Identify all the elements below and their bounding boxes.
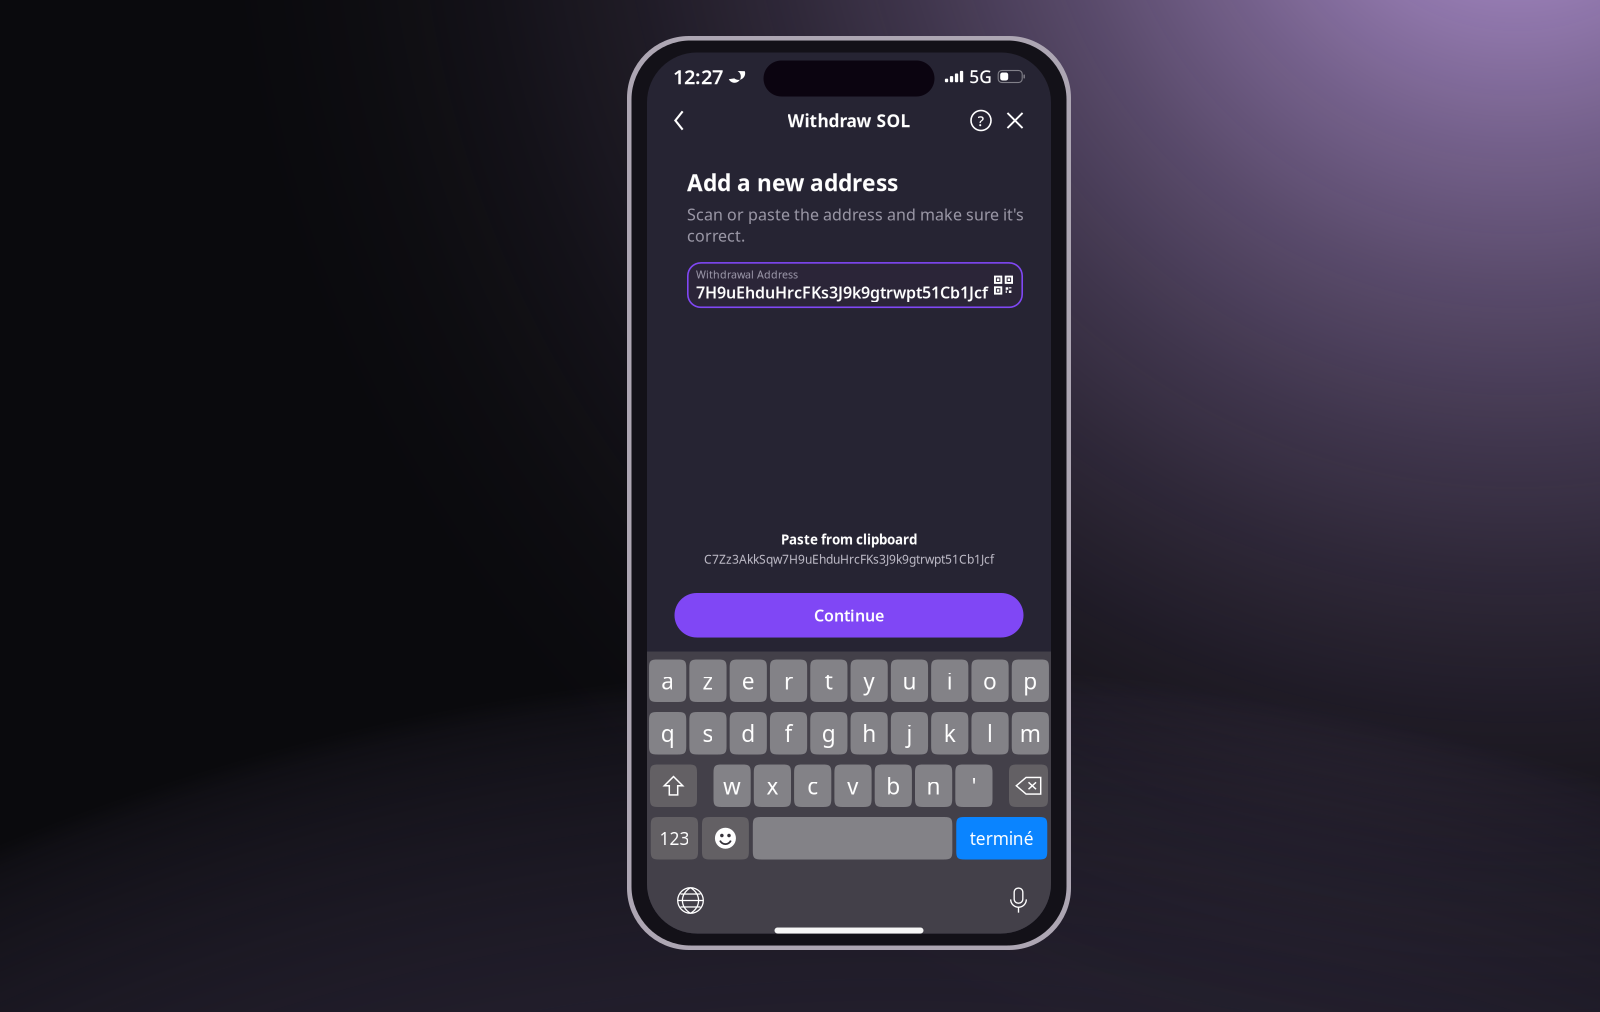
button[interactable]: c bbox=[794, 764, 831, 807]
button[interactable]: k bbox=[931, 712, 968, 754]
staticText: terminé bbox=[970, 827, 1034, 850]
staticText: f bbox=[784, 718, 792, 748]
staticText: C7Zz3AkkSqw7H9uEhduHrcFKs3J9k9gtrwpt51Cb… bbox=[704, 551, 994, 567]
button[interactable]: Shift bbox=[650, 764, 697, 807]
staticText: Withdrawal Address bbox=[696, 267, 798, 282]
staticText: w bbox=[723, 771, 741, 801]
staticText: e bbox=[742, 666, 755, 696]
staticText: k bbox=[944, 718, 956, 748]
staticText: p bbox=[1023, 666, 1037, 696]
button[interactable]: h bbox=[850, 712, 888, 754]
button[interactable]: z bbox=[689, 659, 726, 702]
staticText: y bbox=[863, 666, 875, 696]
button[interactable]: 123 bbox=[651, 817, 698, 859]
staticText: Continue bbox=[814, 605, 884, 626]
staticText: h bbox=[862, 718, 876, 748]
button[interactable]: Paste from clipboard bbox=[679, 530, 1019, 567]
button[interactable]: x bbox=[754, 764, 791, 807]
button[interactable]: Help bbox=[965, 103, 997, 137]
staticText: d bbox=[741, 718, 755, 748]
button[interactable]: Delete bbox=[1009, 764, 1048, 807]
staticText: s bbox=[702, 718, 713, 748]
staticText: t bbox=[825, 666, 833, 696]
button[interactable]: g bbox=[810, 712, 847, 754]
staticText: n bbox=[927, 771, 941, 801]
button[interactable]: Scan QR code bbox=[994, 276, 1013, 295]
button[interactable]: ' bbox=[955, 764, 992, 807]
button[interactable]: e bbox=[730, 659, 767, 702]
button[interactable]: Space bbox=[753, 817, 952, 859]
button[interactable]: Back bbox=[663, 103, 695, 137]
button[interactable]: s bbox=[689, 712, 726, 754]
staticText: i bbox=[947, 666, 953, 696]
staticText: x bbox=[766, 771, 778, 801]
button[interactable]: o bbox=[971, 659, 1009, 702]
staticText: 12:27 bbox=[673, 63, 723, 90]
staticText: Withdraw SOL bbox=[787, 109, 910, 132]
button[interactable]: j bbox=[891, 712, 928, 754]
button[interactable]: l bbox=[971, 712, 1009, 754]
staticText: 123 bbox=[659, 827, 689, 850]
button[interactable]: r bbox=[770, 659, 807, 702]
staticText: o bbox=[983, 666, 997, 696]
button[interactable]: b bbox=[875, 764, 912, 807]
staticText: v bbox=[847, 771, 859, 801]
button[interactable]: i bbox=[931, 659, 968, 702]
button[interactable]: q bbox=[649, 712, 686, 754]
button[interactable]: Emoji bbox=[702, 817, 749, 859]
button[interactable]: Switch keyboard bbox=[670, 880, 710, 920]
staticText: ' bbox=[971, 771, 976, 801]
button[interactable]: p bbox=[1012, 659, 1049, 702]
button[interactable]: terminé bbox=[956, 817, 1047, 859]
button[interactable]: m bbox=[1012, 712, 1049, 754]
staticText: l bbox=[987, 718, 993, 748]
button[interactable]: y bbox=[850, 659, 888, 702]
button[interactable]: w bbox=[713, 764, 751, 807]
staticText: ? bbox=[977, 111, 984, 130]
button[interactable]: t bbox=[810, 659, 847, 702]
staticText: u bbox=[902, 666, 916, 696]
button[interactable]: a bbox=[649, 659, 686, 702]
button[interactable]: v bbox=[834, 764, 872, 807]
staticText: z bbox=[702, 666, 713, 696]
staticText: Paste from clipboard bbox=[781, 530, 917, 548]
staticText: b bbox=[886, 771, 900, 801]
staticText: 5G bbox=[969, 65, 992, 88]
button[interactable]: d bbox=[730, 712, 767, 754]
staticText: Scan or paste the address and make sure … bbox=[687, 204, 1024, 246]
staticText: r bbox=[784, 666, 793, 696]
staticText: c bbox=[807, 771, 818, 801]
staticText: j bbox=[906, 718, 912, 748]
button[interactable]: f bbox=[770, 712, 807, 754]
button[interactable]: Continue bbox=[674, 593, 1023, 637]
staticText: g bbox=[822, 718, 836, 748]
staticText: Add a new address bbox=[687, 167, 898, 198]
staticText: 7H9uEhduHrcFKs3J9k9gtrwpt51Cb1Jcf bbox=[696, 282, 988, 303]
staticText: m bbox=[1020, 718, 1041, 748]
staticText: a bbox=[661, 666, 674, 696]
button[interactable]: n bbox=[915, 764, 952, 807]
button[interactable]: Dictate bbox=[998, 880, 1038, 920]
staticText: q bbox=[661, 718, 675, 748]
button[interactable]: u bbox=[891, 659, 928, 702]
button[interactable]: Close bbox=[999, 103, 1031, 137]
